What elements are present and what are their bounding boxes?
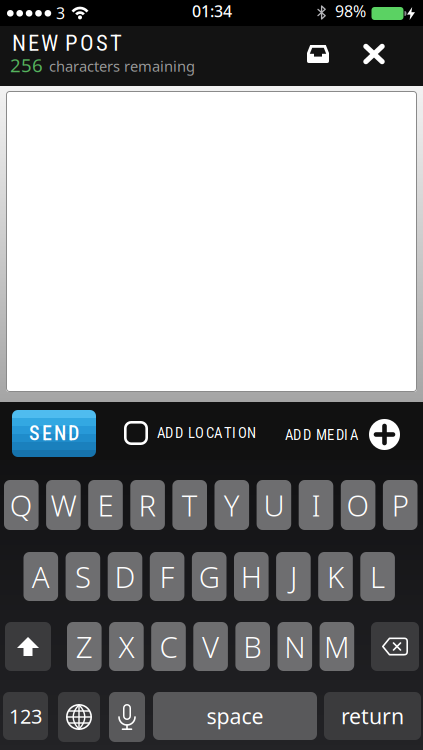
staticText: U: [263, 485, 284, 524]
staticText: V: [202, 627, 219, 666]
staticText: Z: [76, 627, 93, 666]
button[interactable]: U: [257, 480, 291, 530]
button[interactable]: J: [276, 552, 311, 601]
staticText: H: [241, 557, 262, 596]
button[interactable]: Y: [214, 480, 249, 530]
button[interactable]: F: [150, 552, 184, 601]
staticText: K: [327, 557, 344, 596]
button[interactable]: R: [130, 480, 165, 530]
staticText: J: [290, 557, 297, 596]
button[interactable]: H: [234, 552, 269, 601]
staticText: T: [182, 485, 198, 524]
staticText: S: [75, 557, 91, 596]
staticText: 98%: [335, 0, 366, 22]
button[interactable]: S E N D: [12, 410, 96, 457]
staticText: B: [243, 627, 262, 666]
staticText: X: [118, 627, 134, 666]
button[interactable]: Dictate: [109, 692, 145, 742]
button[interactable]: 123: [3, 692, 48, 740]
button[interactable]: S: [66, 552, 100, 601]
button[interactable]: Delete: [371, 622, 419, 671]
button[interactable]: E: [88, 480, 123, 530]
button[interactable]: I: [299, 480, 333, 530]
button[interactable]: L: [360, 552, 395, 601]
staticText: I: [311, 485, 320, 524]
staticText: F: [160, 557, 175, 596]
button[interactable]: A: [23, 552, 58, 601]
button[interactable]: D: [108, 552, 142, 601]
button[interactable]: B: [235, 622, 270, 671]
staticText: Y: [224, 485, 240, 524]
button[interactable]: W: [46, 480, 81, 530]
staticText: N: [284, 627, 305, 666]
button[interactable]: V: [193, 622, 228, 671]
staticText: space: [206, 702, 263, 730]
staticText: A: [32, 557, 50, 596]
staticText: 01:34: [192, 0, 232, 22]
button[interactable]: Z: [67, 622, 102, 671]
staticText: R: [139, 485, 157, 524]
button[interactable]: M: [320, 622, 354, 671]
button[interactable]: space: [153, 692, 317, 740]
button[interactable]: Drafts: [296, 34, 340, 74]
staticText: 123: [9, 703, 42, 729]
button[interactable]: Next keyboard: [58, 692, 100, 742]
staticText: L: [370, 557, 385, 596]
button[interactable]: O: [341, 480, 375, 530]
button[interactable]: C: [151, 622, 186, 671]
staticText: Q: [10, 485, 33, 524]
button[interactable]: P: [383, 480, 417, 530]
button[interactable]: N: [277, 622, 312, 671]
button[interactable]: return: [324, 692, 421, 740]
staticText: AD D ME DI A: [285, 426, 358, 444]
button[interactable]: X: [109, 622, 144, 671]
staticText: C: [159, 627, 177, 666]
button[interactable]: Q: [4, 480, 39, 530]
staticText: AD D LO CA TI ON: [157, 424, 256, 442]
staticText: return: [341, 702, 404, 730]
staticText: 3: [56, 2, 65, 24]
staticText: D: [114, 557, 135, 596]
button[interactable]: Add location: [124, 418, 267, 448]
button[interactable]: Add media: [285, 417, 400, 452]
staticText: E: [97, 485, 113, 524]
staticText: W: [50, 485, 76, 524]
button[interactable]: Close: [352, 34, 396, 74]
button[interactable]: T: [172, 480, 207, 530]
button[interactable]: Shift: [5, 622, 51, 671]
staticText: S E N D: [29, 422, 79, 445]
staticText: characters remaining: [49, 56, 195, 76]
staticText: 256: [10, 53, 43, 77]
staticText: G: [199, 557, 220, 596]
button[interactable]: G: [192, 552, 226, 601]
staticText: P: [392, 485, 409, 524]
staticText: M: [324, 627, 350, 666]
staticText: N E W P O S T: [12, 30, 122, 56]
staticText: O: [347, 485, 370, 524]
button[interactable]: K: [318, 552, 353, 601]
